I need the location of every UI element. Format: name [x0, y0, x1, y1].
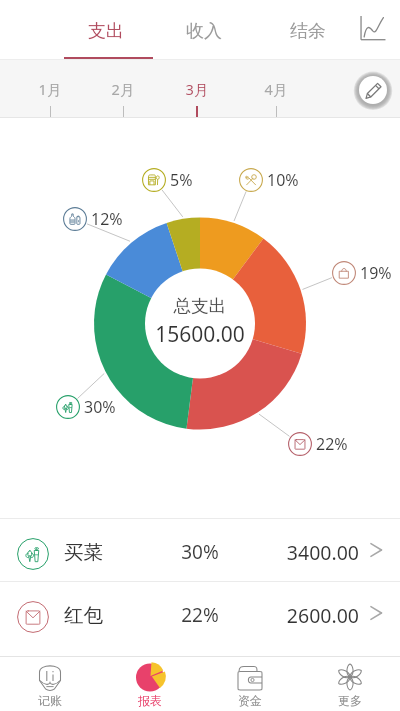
button[interactable]: 支出 — [66, 0, 146, 58]
staticText: 10% — [267, 169, 299, 191]
button[interactable]: 红包 — [0, 582, 400, 644]
staticText: 2600.00 — [259, 602, 359, 629]
staticText: 22% — [316, 433, 348, 455]
staticText: 19% — [360, 262, 392, 284]
staticText: 红包 — [64, 603, 103, 628]
staticText: 记账 — [38, 693, 62, 708]
staticText: 总支出 — [145, 295, 255, 317]
button[interactable]: 3月 — [161, 60, 233, 118]
button[interactable]: 资金 — [200, 657, 300, 711]
staticText: 30% — [84, 396, 116, 418]
button[interactable]: 收入 — [164, 0, 244, 58]
button[interactable]: 2月 — [87, 60, 159, 118]
staticText: 5% — [170, 169, 193, 191]
button[interactable]: 结余 — [268, 0, 348, 58]
staticText: 买菜 — [64, 540, 103, 565]
button[interactable]: 更多 — [300, 657, 400, 711]
staticText: 30% — [170, 539, 230, 565]
staticText: 12% — [91, 208, 123, 230]
staticText: 2月 — [87, 79, 159, 99]
staticText: 结余 — [290, 20, 326, 43]
staticText: 支出 — [88, 20, 124, 43]
button[interactable]: 买菜 — [0, 519, 400, 581]
staticText: 资金 — [238, 693, 262, 708]
staticText: 4月 — [240, 79, 312, 99]
staticText: 报表 — [138, 693, 162, 708]
button[interactable]: 报表 — [100, 657, 200, 711]
staticText: 22% — [170, 602, 230, 628]
button[interactable]: 1月 — [14, 60, 86, 118]
button[interactable]: Edit — [359, 76, 387, 104]
staticText: 收入 — [186, 20, 222, 43]
staticText: 15600.00 — [145, 320, 255, 349]
button[interactable]: 记账 — [0, 657, 100, 711]
staticText: 3月 — [161, 79, 233, 99]
staticText: 1月 — [14, 79, 86, 99]
staticText: 3400.00 — [259, 539, 359, 566]
button[interactable]: 4月 — [240, 60, 312, 118]
button[interactable]: Trend chart — [351, 6, 395, 50]
staticText: 更多 — [338, 693, 362, 708]
